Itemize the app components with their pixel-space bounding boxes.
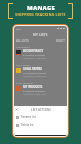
staticText: LEGAL PAPERS	[23, 67, 42, 71]
staticText: 8 tracking numbers	[23, 53, 45, 56]
staticText: SELECT	[56, 39, 65, 42]
staticText: 14 tracking numbers	[23, 71, 47, 74]
button[interactable]: ACCOUNTANCY	[14, 49, 67, 63]
staticText: LIST ACTIONS	[31, 108, 51, 112]
button[interactable]: MY PRODUCTS	[14, 85, 67, 99]
button[interactable]: Delete list	[14, 121, 67, 129]
staticText: Rename list	[21, 115, 36, 119]
button[interactable]: Close	[15, 108, 18, 111]
staticText: ACCOUNTANCY	[23, 49, 44, 53]
staticText: SHIPPING TRACKING LISTS	[15, 12, 66, 17]
staticText: MANAGE	[27, 4, 55, 12]
staticText: Updated 21 Feb 2021	[23, 56, 47, 59]
staticText: MY LISTS	[33, 33, 48, 37]
button[interactable]: LEGAL PAPERS	[14, 67, 67, 81]
button[interactable]: Rename list	[14, 113, 67, 121]
staticText: MY PRODUCTS	[23, 85, 43, 89]
staticText: Updated 31 Jan 2021	[23, 92, 47, 95]
staticText: LAST WEEK	[16, 64, 31, 67]
staticText: LAST MONTH	[16, 82, 33, 85]
staticText: YESTERDAY	[16, 46, 31, 49]
staticText: 9:41	[16, 27, 21, 30]
staticText: 6 tracking numbers	[23, 89, 45, 92]
staticText: Delete list	[21, 123, 34, 127]
staticText: Updated 16 Feb 2021	[23, 74, 47, 77]
staticText: ALL LISTS	[16, 39, 29, 43]
